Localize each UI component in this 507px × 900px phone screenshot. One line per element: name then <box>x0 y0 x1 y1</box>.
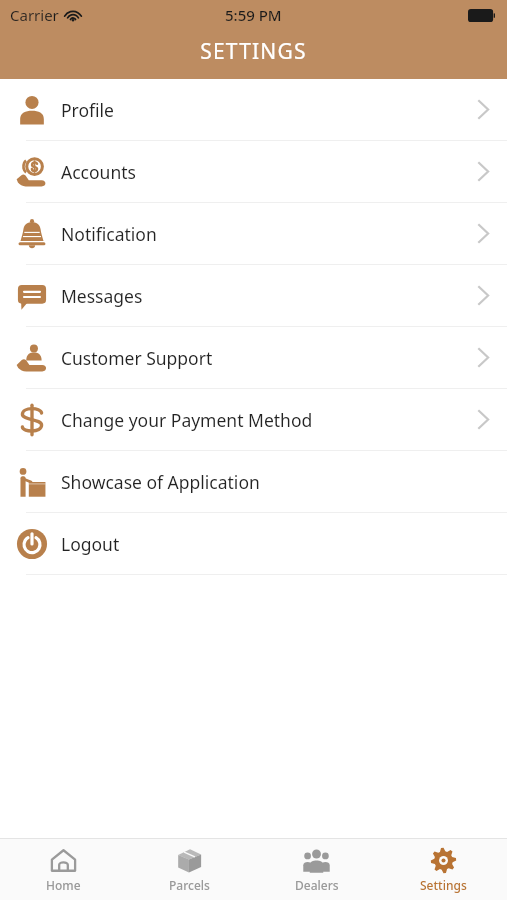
button[interactable]: Parcels <box>126 839 253 900</box>
button[interactable]: Logout <box>0 513 507 574</box>
button[interactable]: Dealers <box>253 839 380 900</box>
staticText: Parcels <box>169 877 210 893</box>
button[interactable]: Showcase of Application <box>0 451 507 512</box>
staticText: Messages <box>61 284 143 308</box>
staticText: Carrier <box>10 5 59 25</box>
staticText: Accounts <box>61 160 136 184</box>
button[interactable]: Change your Payment Method <box>0 389 507 450</box>
staticText: Dealers <box>295 877 339 893</box>
staticText: Customer Support <box>61 346 213 370</box>
button[interactable]: Settings <box>380 839 507 900</box>
staticText: 5:59 PM <box>225 5 282 25</box>
staticText: Profile <box>61 98 114 122</box>
staticText: Settings <box>420 877 467 893</box>
button[interactable]: Customer Support <box>0 327 507 388</box>
staticText: Change your Payment Method <box>61 408 313 432</box>
staticText: Notification <box>61 222 157 246</box>
staticText: Home <box>46 877 81 893</box>
button[interactable]: Profile <box>0 79 507 140</box>
staticText: SETTINGS <box>200 37 307 66</box>
staticText: Logout <box>61 532 120 556</box>
button[interactable]: Home <box>0 839 126 900</box>
button[interactable]: Accounts <box>0 141 507 202</box>
staticText: Showcase of Application <box>61 470 260 494</box>
button[interactable]: Messages <box>0 265 507 326</box>
button[interactable]: Notification <box>0 203 507 264</box>
